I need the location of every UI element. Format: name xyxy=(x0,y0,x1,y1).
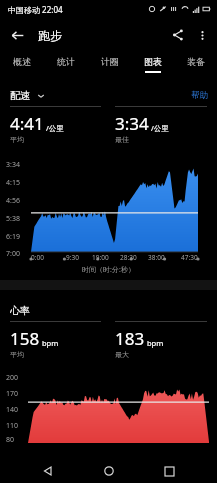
button[interactable]: 装备 xyxy=(174,52,217,78)
staticText: bpm xyxy=(147,338,164,348)
staticText: 最佳 xyxy=(115,135,129,144)
button[interactable]: Recents xyxy=(157,459,181,483)
staticText: 装备 xyxy=(187,56,205,67)
staticText: 最大 xyxy=(115,350,129,359)
staticText: 9:30 xyxy=(66,253,79,262)
staticText: 中国移动 22:04 xyxy=(8,4,63,15)
staticText: 170 xyxy=(6,389,19,399)
staticText: 19:00 xyxy=(92,253,109,262)
staticText: 心率 xyxy=(10,304,30,317)
staticText: bpm xyxy=(42,338,59,348)
staticText: 图表 xyxy=(144,56,162,67)
staticText: 140 xyxy=(6,405,19,415)
staticText: 时间（时:分:秒） xyxy=(0,265,217,275)
staticText: 统计 xyxy=(57,56,75,67)
button[interactable]: Back xyxy=(7,25,27,45)
button[interactable]: 统计 xyxy=(44,52,88,78)
staticText: 158 xyxy=(10,327,40,350)
staticText: 38:00 xyxy=(148,253,165,262)
staticText: 183 xyxy=(115,327,145,350)
button[interactable]: 图表 xyxy=(131,52,174,78)
button[interactable]: Home xyxy=(97,459,121,483)
button[interactable]: 概述 xyxy=(0,52,44,78)
staticText: 6:19 xyxy=(6,232,20,242)
staticText: 概述 xyxy=(13,56,31,67)
staticText: /公里 xyxy=(151,123,169,133)
staticText: 3:34 xyxy=(6,160,20,170)
staticText: 7:00 xyxy=(6,249,20,259)
staticText: 平均 xyxy=(10,135,24,144)
staticText: 5:38 xyxy=(6,214,20,224)
staticText: 110 xyxy=(6,421,19,431)
button[interactable]: 心率 xyxy=(10,304,30,317)
button[interactable]: 配速 xyxy=(10,89,45,102)
staticText: 4:56 xyxy=(6,196,20,206)
button[interactable]: Share xyxy=(165,22,191,48)
button[interactable]: 帮助 xyxy=(191,90,208,101)
button[interactable]: Back xyxy=(36,459,60,483)
staticText: 4:41 xyxy=(10,112,44,135)
staticText: 0:00 xyxy=(31,253,44,262)
staticText: 47:30 xyxy=(181,253,198,262)
staticText: 4:15 xyxy=(6,178,20,188)
staticText: 配速 xyxy=(10,89,30,102)
button[interactable]: More options xyxy=(191,22,214,48)
staticText: 80 xyxy=(6,435,15,445)
staticText: 跑步 xyxy=(38,28,62,43)
button[interactable]: 计圈 xyxy=(88,52,131,78)
staticText: 计圈 xyxy=(101,56,119,67)
staticText: 3:34 xyxy=(115,112,149,135)
staticText: 平均 xyxy=(10,350,24,359)
staticText: 200 xyxy=(6,373,19,383)
staticText: 28:30 xyxy=(120,253,137,262)
staticText: /公里 xyxy=(46,123,64,133)
